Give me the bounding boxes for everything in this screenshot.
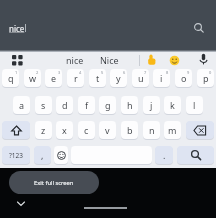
staticText: nice [66, 54, 84, 66]
staticText: 5 [101, 70, 104, 75]
button[interactable]: e [45, 69, 62, 87]
button[interactable]: o [175, 69, 192, 87]
button[interactable]: b [121, 121, 138, 139]
button[interactable] [54, 146, 68, 164]
staticText: w [29, 72, 37, 84]
button[interactable]: u [132, 69, 149, 87]
staticText: n [149, 124, 155, 136]
staticText: u [138, 72, 144, 84]
staticText: j [150, 99, 153, 111]
button[interactable]: a [13, 96, 30, 114]
staticText: 6 [123, 70, 126, 75]
staticText: a [19, 99, 25, 111]
button[interactable]: . [155, 146, 173, 164]
staticText: 2 [36, 70, 39, 75]
button[interactable]: l [186, 96, 203, 114]
button[interactable]: , [34, 146, 51, 164]
staticText: d [62, 99, 68, 111]
staticText: q [8, 72, 14, 84]
staticText: o [181, 72, 187, 84]
staticText: Exit full screen [34, 179, 74, 187]
staticText: c [84, 124, 89, 136]
staticText: z [41, 124, 46, 136]
staticText: . [163, 149, 166, 161]
button[interactable]: n [143, 121, 160, 139]
staticText: h [127, 99, 133, 111]
staticText: t [96, 72, 100, 84]
button[interactable]: r [67, 69, 84, 87]
button[interactable]: c [78, 121, 95, 139]
staticText: ?123 [9, 151, 23, 160]
staticText: v [105, 124, 110, 136]
staticText: k [170, 99, 175, 111]
button[interactable]: w [24, 69, 41, 87]
staticText: 4 [79, 70, 82, 75]
staticText: i [160, 72, 163, 84]
staticText: r [74, 72, 78, 84]
staticText: 8 [166, 70, 169, 75]
staticText: Nice [100, 54, 119, 66]
staticText: f [85, 99, 89, 111]
button[interactable] [169, 55, 180, 66]
button[interactable] [2, 121, 30, 139]
button[interactable] [146, 54, 158, 66]
button[interactable]: k [164, 96, 181, 114]
button[interactable]: i [153, 69, 170, 87]
button[interactable] [198, 53, 209, 66]
staticText: l [193, 99, 196, 111]
button[interactable]: q [2, 69, 19, 87]
staticText: p [203, 72, 209, 84]
staticText: nice [9, 23, 25, 34]
button[interactable]: z [35, 121, 52, 139]
button[interactable]: y [110, 69, 127, 87]
button[interactable]: f [78, 96, 95, 114]
button[interactable]: Exit full screen [9, 171, 99, 194]
staticText: 7 [144, 70, 147, 75]
staticText: y [116, 72, 121, 84]
button[interactable]: p [197, 69, 214, 87]
button[interactable]: j [143, 96, 160, 114]
button[interactable] [186, 121, 214, 139]
button[interactable]: g [99, 96, 116, 114]
button[interactable]: Nice [96, 51, 123, 69]
staticText: x [62, 124, 67, 136]
staticText: e [51, 72, 57, 84]
button[interactable]: x [56, 121, 73, 139]
staticText: 9 [187, 70, 190, 75]
button[interactable]: ?123 [2, 146, 30, 164]
button[interactable]: h [121, 96, 138, 114]
button[interactable] [177, 146, 214, 164]
staticText: 3 [58, 70, 61, 75]
button[interactable] [193, 22, 205, 34]
button[interactable] [12, 55, 23, 66]
button[interactable]: s [35, 96, 52, 114]
staticText: g [105, 99, 111, 111]
button[interactable] [15, 200, 27, 208]
staticText: b [127, 124, 133, 136]
button[interactable]: d [56, 96, 73, 114]
button[interactable] [0, 0, 216, 50]
staticText: 1 [15, 70, 18, 75]
button[interactable]: v [99, 121, 116, 139]
button[interactable]: nice [53, 51, 97, 69]
staticText: , [41, 149, 44, 161]
staticText: s [41, 99, 46, 111]
staticText: 0 [209, 70, 212, 75]
staticText: m [168, 124, 177, 136]
button[interactable]: t [89, 69, 106, 87]
button[interactable]: m [164, 121, 181, 139]
